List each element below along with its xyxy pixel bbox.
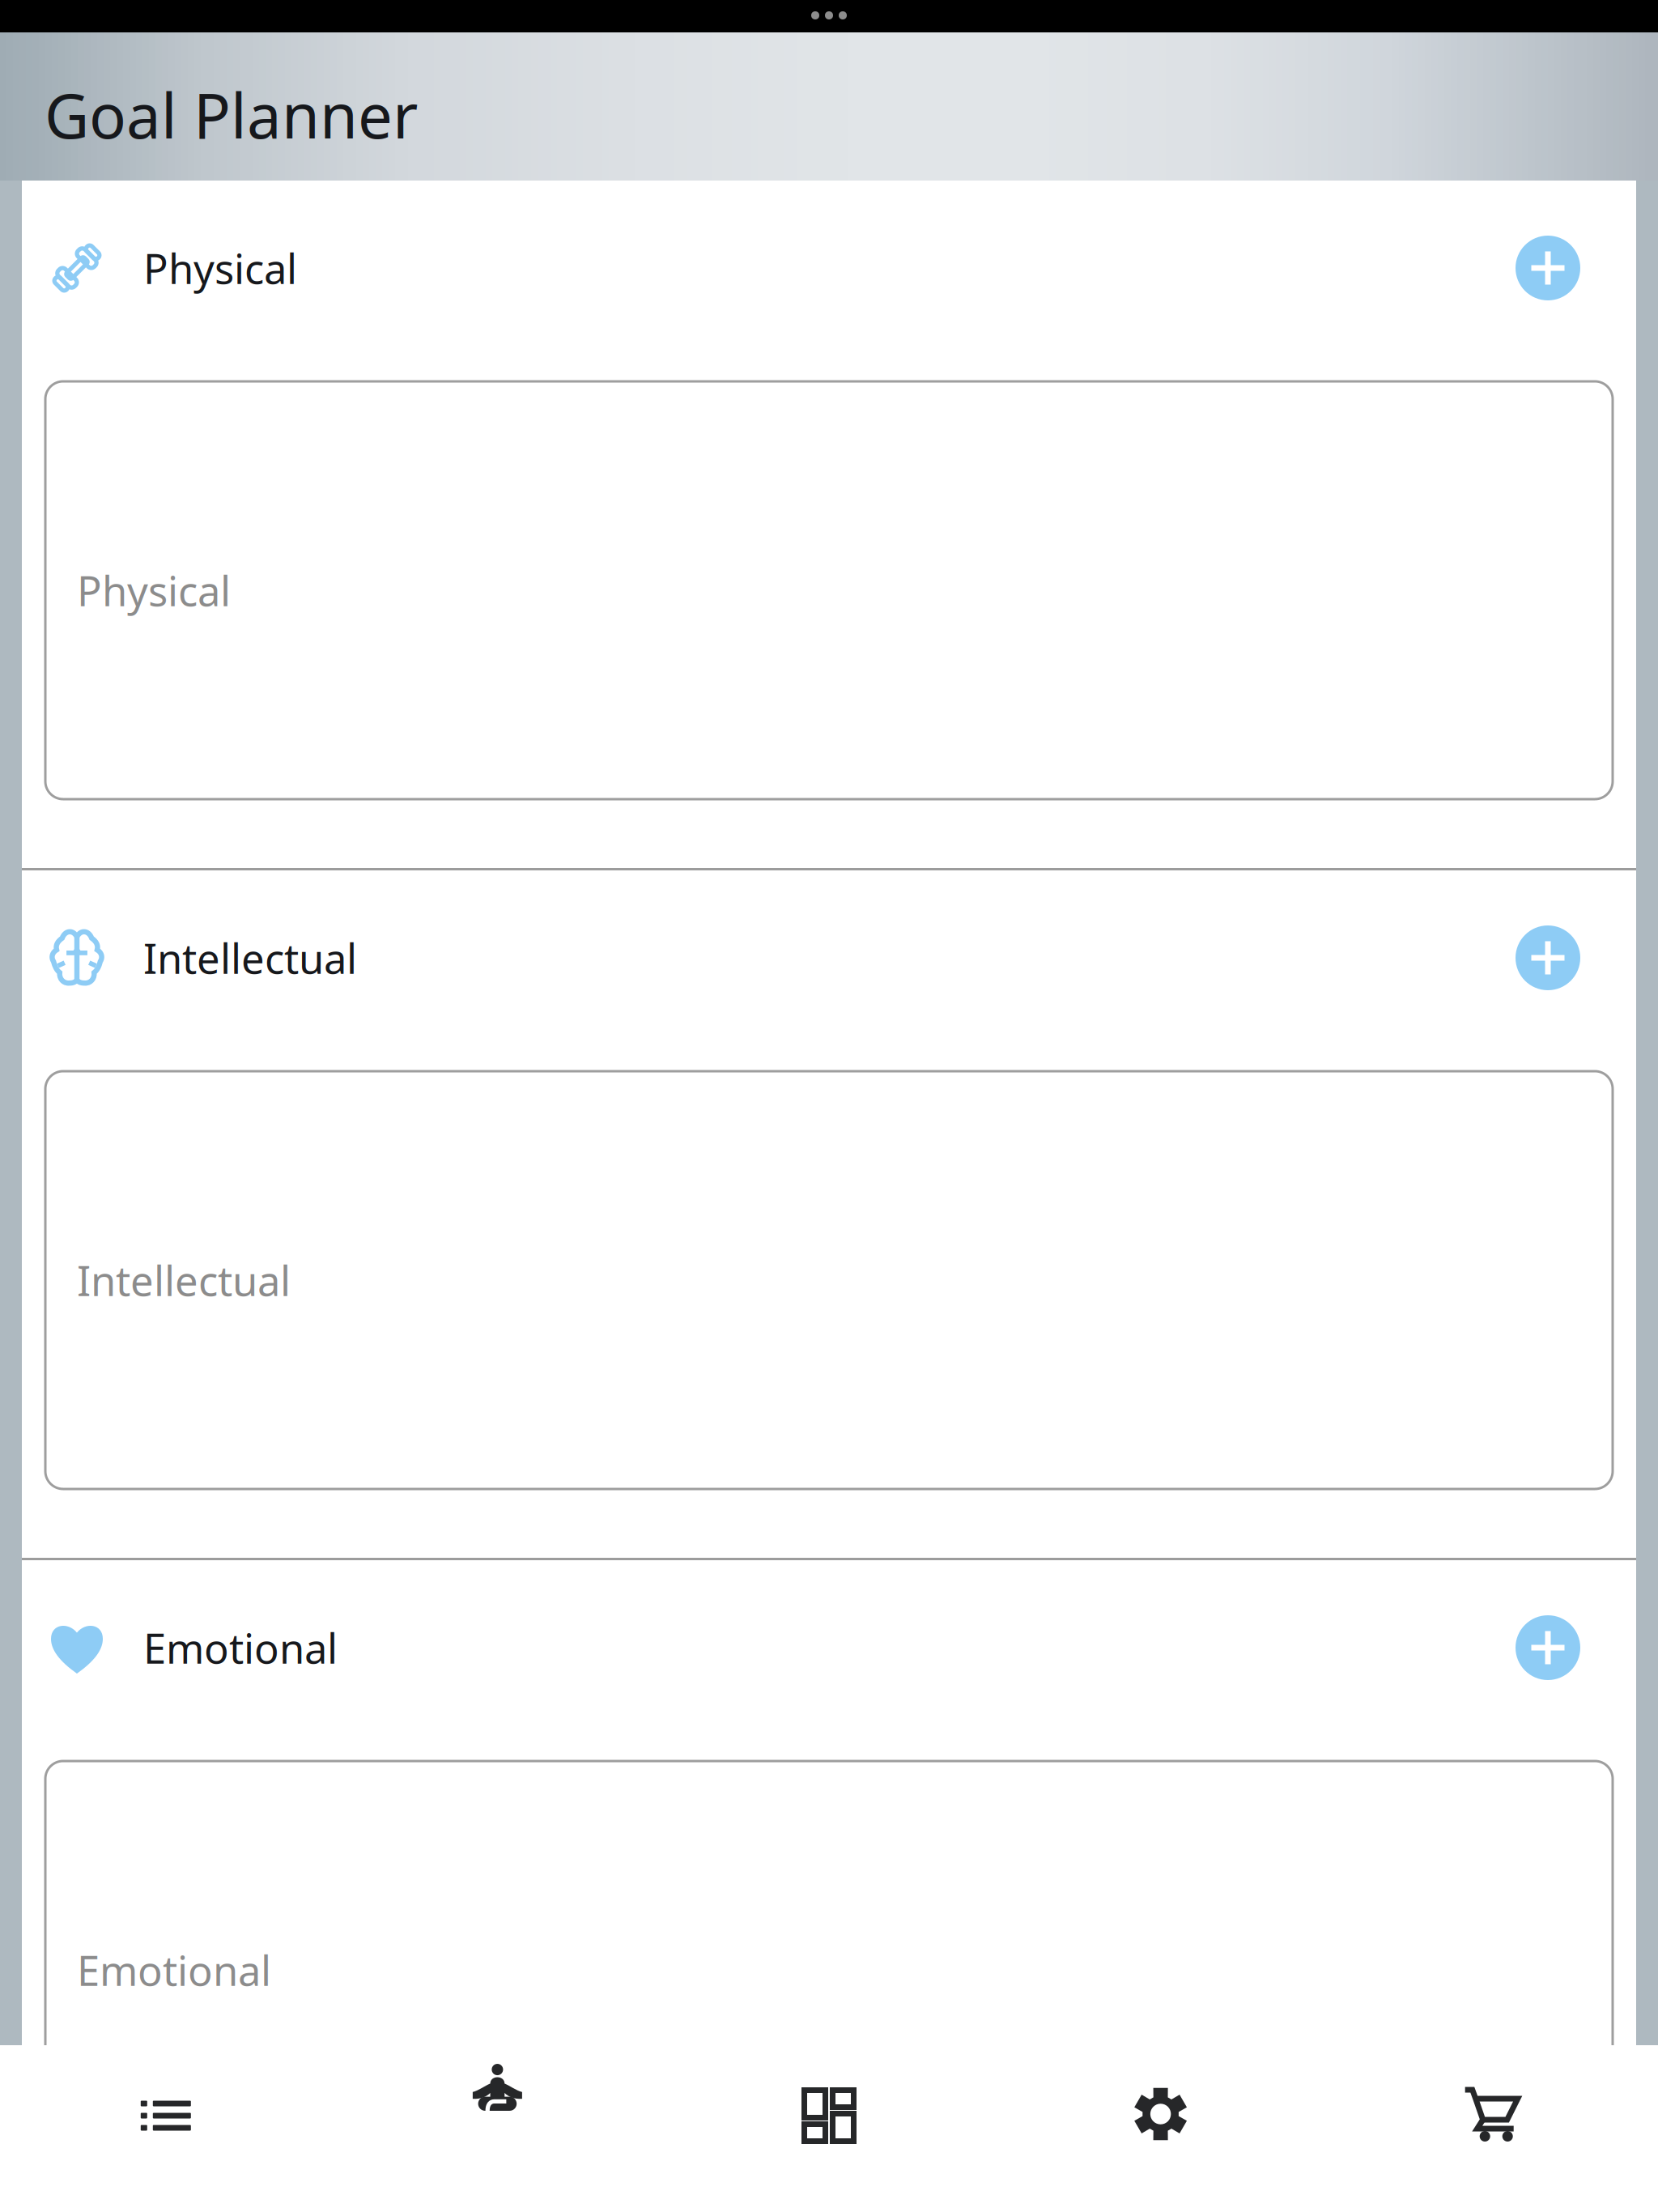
button[interactable]: Store: [1326, 2045, 1658, 2212]
staticText: Physical: [143, 241, 297, 295]
staticText: Goal Planner: [45, 74, 418, 155]
button[interactable]: Goals: [0, 2045, 332, 2212]
button[interactable]: Physical: [45, 381, 1613, 799]
button[interactable]: Settings: [995, 2045, 1326, 2212]
staticText: Emotional: [143, 1620, 338, 1675]
button[interactable]: Add Emotional goal: [1516, 1615, 1580, 1680]
button[interactable]: Mindfulness: [332, 2045, 663, 2212]
button[interactable]: Emotional: [45, 1761, 1613, 2179]
button[interactable]: Add Intellectual goal: [1516, 925, 1580, 990]
button[interactable]: Dashboard: [663, 2045, 995, 2212]
button[interactable]: Intellectual: [45, 1071, 1613, 1489]
staticText: Intellectual: [77, 1253, 291, 1307]
staticText: Emotional: [77, 1943, 271, 1997]
staticText: Physical: [77, 563, 231, 618]
button[interactable]: Add Physical goal: [1516, 236, 1580, 300]
staticText: Intellectual: [143, 931, 357, 985]
